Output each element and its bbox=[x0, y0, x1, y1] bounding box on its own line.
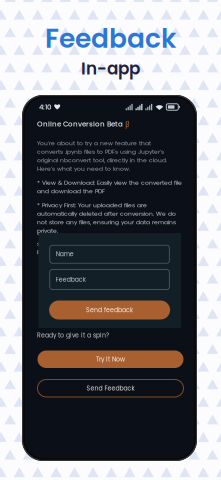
button[interactable]: Name bbox=[50, 245, 169, 263]
staticText: * View & Download: Easily view the conve… bbox=[37, 178, 182, 195]
staticText: * Privacy First: Your uploaded files are… bbox=[37, 201, 176, 235]
staticText: Ready to give it a spin? bbox=[37, 331, 109, 340]
staticText: Try It Now bbox=[96, 355, 125, 364]
staticText: Send Feedback bbox=[86, 384, 134, 393]
staticText: Feedback bbox=[56, 275, 86, 284]
staticText: β bbox=[125, 119, 129, 129]
staticText: In-app bbox=[81, 57, 140, 80]
staticText: 4:10 bbox=[39, 102, 51, 112]
button[interactable]: Feedback bbox=[50, 269, 169, 289]
staticText: * Cloud Processing: Conversion runs on o… bbox=[37, 231, 168, 256]
staticText: Send feedback bbox=[86, 306, 133, 314]
staticText: Name bbox=[56, 250, 74, 258]
button[interactable]: Try It Now bbox=[37, 350, 183, 368]
staticText: Online Conversion Beta bbox=[37, 119, 123, 129]
staticText: Feedback bbox=[45, 20, 176, 57]
button[interactable]: Send Feedback bbox=[37, 379, 183, 397]
staticText: You're about to try a new feature that c… bbox=[37, 139, 167, 173]
button[interactable]: Send feedback bbox=[49, 300, 170, 319]
